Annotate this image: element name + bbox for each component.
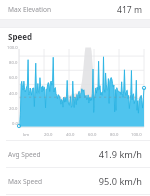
button[interactable]: Max Elevation [0,0,150,19]
staticText: Avg Speed [8,150,98,159]
staticText: 100.0 [131,132,142,138]
staticText: Max Elevation [8,5,116,14]
button[interactable]: Max Speed [0,168,150,194]
staticText: 60.0 [88,132,97,138]
staticText: km [23,132,30,138]
staticText: 40.0 [66,132,75,138]
staticText: 40.0 [9,91,18,97]
staticText: Speed [8,31,33,42]
staticText: 80.0 [110,132,119,138]
staticText: 60.0 [9,75,18,81]
other: Speed chart [0,44,150,140]
staticText: 95.0 km/h [98,175,142,188]
staticText: Max Speed [8,177,98,186]
staticText: 80.0 [9,60,18,66]
staticText: 41.9 km/h [98,148,142,161]
staticText: 20.0 [9,106,18,112]
staticText: 100.0 [7,45,18,51]
staticText: 20.0 [44,132,53,138]
button[interactable]: Avg Speed [0,141,150,167]
staticText: 0.0 [12,121,18,127]
staticText: 417 m [116,4,142,16]
